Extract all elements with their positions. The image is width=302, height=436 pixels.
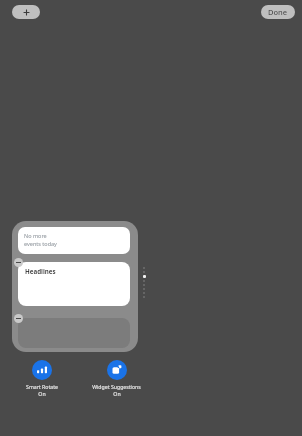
staticText: On (38, 390, 46, 397)
staticText: On (113, 390, 121, 397)
button[interactable]: Done (261, 5, 295, 19)
staticText: Headlines (25, 267, 56, 275)
staticText: Done (268, 7, 288, 17)
button[interactable]: Headlines (18, 262, 130, 306)
button[interactable]: Widget Suggestions, On (89, 360, 144, 397)
staticText: events today (24, 240, 57, 247)
button[interactable]: Remove widget (14, 314, 23, 323)
button[interactable] (18, 318, 130, 348)
staticText: No more (24, 232, 47, 239)
button[interactable]: Remove Headlines widget (14, 258, 23, 267)
staticText: Smart Rotate (26, 383, 58, 390)
button[interactable]: No more (18, 227, 130, 254)
button[interactable] (12, 221, 138, 352)
staticText: Widget Suggestions (92, 383, 141, 390)
button[interactable]: Add widget (12, 5, 40, 19)
button[interactable]: Smart Rotate, On (14, 360, 69, 397)
